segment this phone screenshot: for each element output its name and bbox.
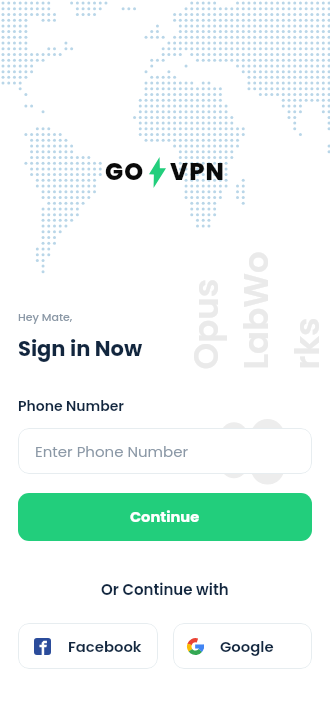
staticText: Or Continue with bbox=[101, 579, 229, 600]
staticText: Hey Mate, bbox=[18, 309, 73, 324]
staticText: Continue bbox=[130, 507, 200, 527]
staticText: Facebook bbox=[68, 636, 142, 657]
button[interactable]: Continue bbox=[18, 493, 312, 541]
staticText: VPN bbox=[170, 155, 226, 189]
staticText: Opus LabWorks bbox=[181, 249, 330, 369]
button[interactable]: Google bbox=[173, 623, 312, 669]
staticText: Enter Phone Number bbox=[35, 441, 189, 462]
staticText: Sign in Now bbox=[18, 334, 143, 363]
staticText: GO bbox=[105, 155, 145, 189]
staticText: Google bbox=[220, 636, 274, 657]
button[interactable]: Enter Phone Number bbox=[18, 428, 312, 474]
button[interactable]: Facebook bbox=[18, 623, 158, 669]
staticText: Phone Number bbox=[18, 396, 124, 416]
